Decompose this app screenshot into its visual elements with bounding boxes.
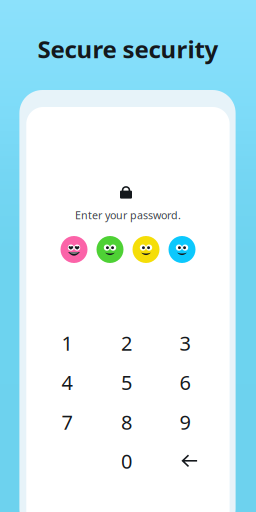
- button[interactable]: 1: [42, 326, 92, 360]
- staticText: 9: [179, 409, 190, 435]
- staticText: 6: [179, 369, 190, 396]
- staticText: 8: [121, 409, 132, 435]
- button[interactable]: 5: [101, 365, 151, 399]
- staticText: Enter your password.: [75, 208, 181, 222]
- button[interactable]: 8: [101, 405, 151, 439]
- button[interactable]: 2: [101, 326, 151, 360]
- button[interactable]: 9: [160, 405, 210, 439]
- button[interactable]: 7: [42, 405, 92, 439]
- button[interactable]: 3: [160, 326, 210, 360]
- button[interactable]: 6: [160, 365, 210, 399]
- staticText: 5: [121, 369, 132, 396]
- staticText: 1: [61, 330, 72, 356]
- staticText: 2: [121, 330, 132, 356]
- staticText: Secure security: [37, 33, 218, 65]
- staticText: 4: [61, 369, 72, 396]
- staticText: 0: [121, 448, 132, 474]
- button[interactable]: 4: [42, 365, 92, 399]
- button[interactable]: 0: [101, 444, 151, 478]
- staticText: 7: [61, 409, 72, 435]
- button[interactable]: [160, 444, 210, 478]
- staticText: 3: [179, 330, 190, 356]
